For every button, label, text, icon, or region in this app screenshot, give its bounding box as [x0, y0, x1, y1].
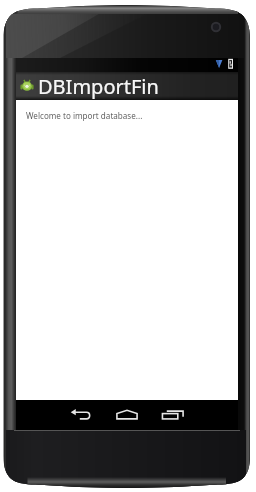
button[interactable]: Back — [69, 400, 93, 430]
button[interactable]: DBImportFin — [16, 72, 238, 100]
button[interactable]: Home — [115, 400, 139, 430]
staticText: Welcome to import database... — [26, 110, 143, 121]
staticText: DBImportFin — [38, 73, 159, 100]
button[interactable]: Recents — [161, 400, 185, 430]
